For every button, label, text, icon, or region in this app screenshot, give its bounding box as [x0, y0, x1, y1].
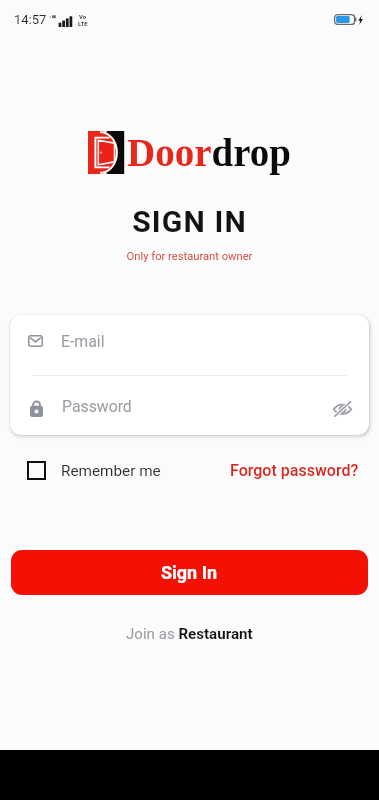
staticText: 14:57	[14, 12, 47, 27]
staticText: Doordrop	[127, 131, 291, 174]
staticText: Join as Restaurant	[126, 625, 253, 643]
staticText: Vo	[79, 13, 87, 20]
button[interactable]: Remember me	[27, 461, 161, 480]
staticText: E-mail	[61, 332, 105, 351]
button[interactable]: Join as Restaurant	[122, 621, 257, 647]
button[interactable]: Sign In	[11, 550, 368, 595]
staticText: Forgot password?	[230, 461, 359, 480]
staticText: Sign In	[161, 562, 218, 583]
button[interactable]: Password	[10, 376, 369, 435]
staticText: Password	[62, 397, 132, 416]
staticText: SIGN IN	[0, 204, 379, 239]
button[interactable]: E-mail	[10, 315, 369, 375]
staticText: LTE	[78, 20, 88, 27]
staticText: Only for restaurant owner	[0, 250, 379, 263]
button[interactable]: Show password	[332, 399, 352, 419]
button[interactable]: Forgot password?	[230, 461, 359, 480]
staticText: Remember me	[61, 462, 161, 480]
